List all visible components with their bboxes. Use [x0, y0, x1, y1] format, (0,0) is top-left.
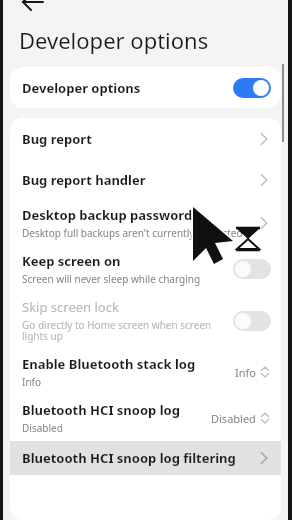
staticText: Disabled [211, 411, 256, 426]
button[interactable]: Desktop backup password [10, 200, 281, 246]
staticText: Go directly to Home screen when screen l… [22, 318, 227, 343]
button[interactable]: Enable Bluetooth stack log [10, 349, 281, 395]
staticText: Disabled [22, 421, 63, 435]
button[interactable]: Bluetooth HCI snoop log [10, 395, 281, 441]
staticText: Screen will never sleep while charging [22, 272, 201, 286]
staticText: Enable Bluetooth stack log [22, 355, 196, 373]
staticText: Desktop full backups aren't currently pr… [22, 226, 243, 240]
staticText: Bug report [22, 130, 92, 148]
staticText: Bluetooth HCI snoop log filtering [22, 449, 236, 467]
staticText: Developer options [19, 25, 209, 55]
staticText: Bluetooth HCI snoop log [22, 401, 180, 419]
button[interactable]: Toggle on [233, 78, 271, 98]
staticText: Developer options [22, 79, 141, 97]
button[interactable]: Bug report handler [10, 159, 281, 200]
button[interactable]: Bug report [10, 118, 281, 159]
staticText: Skip screen lock [22, 298, 119, 316]
staticText: Keep screen on [22, 252, 121, 270]
staticText: Info [235, 365, 256, 380]
button[interactable]: Back [3, 0, 51, 17]
button[interactable]: Skip screen lock [10, 292, 281, 349]
button[interactable]: Developer options [10, 67, 281, 108]
staticText: Info [22, 375, 42, 389]
button[interactable]: Keep screen on [10, 246, 281, 292]
staticText: Desktop backup password [22, 206, 193, 224]
button[interactable]: Toggle off [233, 311, 271, 331]
button[interactable]: Toggle off [233, 259, 271, 279]
staticText: Bug report handler [22, 171, 146, 189]
button[interactable]: Bluetooth HCI snoop log filtering [10, 441, 281, 475]
